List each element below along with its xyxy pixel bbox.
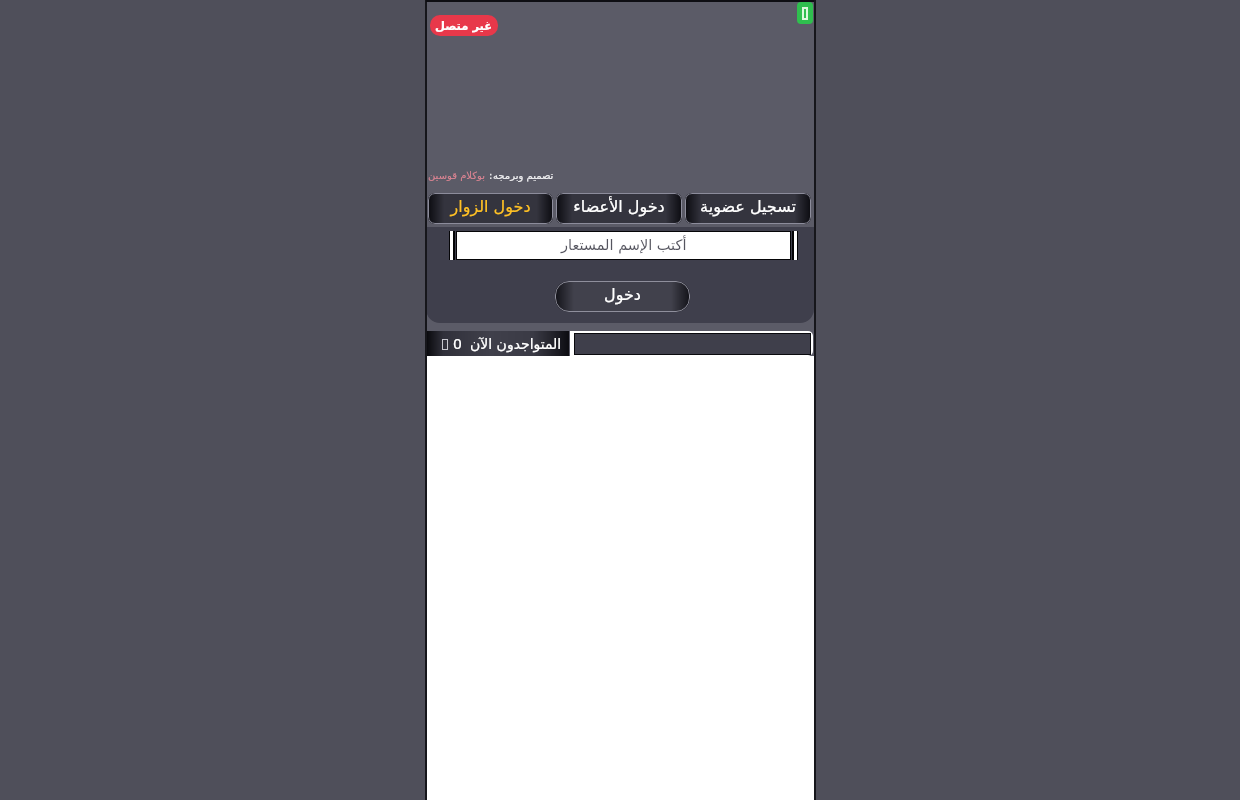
staticText: أكتب الإسم المستعار [561,237,687,254]
staticText: : [489,170,493,182]
button[interactable]: دخول الأعضاء [556,193,682,224]
staticText: بوكلام قوسين [428,170,486,182]
button[interactable]: Settings [797,2,813,24]
staticText: تصميم وبرمجه [493,170,554,182]
button[interactable]: دخول [555,281,690,312]
staticText: غير متصل [435,19,493,32]
button[interactable]: غير متصل [430,15,498,36]
staticText: دخول الزوار [450,197,531,216]
button[interactable]: دخول الزوار [428,193,553,224]
button[interactable]: أكتب الإسم المستعار [457,232,790,259]
staticText: دخول الأعضاء [573,197,665,216]
staticText: 0 [453,336,462,352]
staticText: المتواجدون الآن [470,336,562,352]
button[interactable]: تسجيل عضوية [685,193,811,224]
button[interactable]: 0 [426,331,569,356]
staticText: تسجيل عضوية [700,197,796,216]
staticText: دخول [604,285,641,304]
